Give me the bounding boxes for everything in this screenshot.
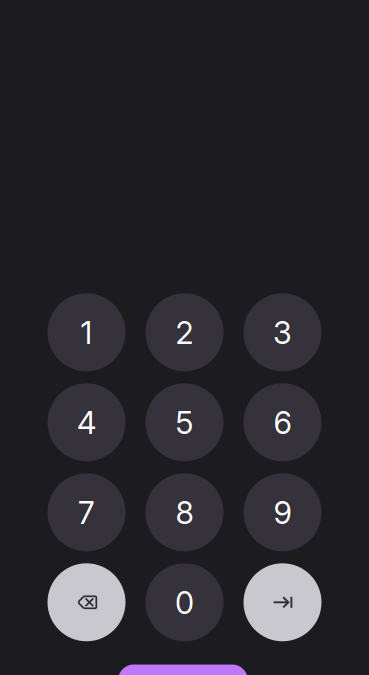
button[interactable]: 2 [145, 293, 223, 371]
staticText: 8 [175, 494, 193, 531]
staticText: 9 [273, 494, 291, 531]
button[interactable]: 7 [47, 473, 125, 551]
staticText: 4 [77, 404, 96, 441]
button[interactable]: Continue [118, 664, 248, 675]
staticText: 7 [78, 494, 95, 531]
staticText: 3 [273, 314, 292, 351]
staticText: 0 [175, 584, 194, 621]
button[interactable]: 3 [243, 293, 321, 371]
button[interactable]: 5 [145, 383, 223, 461]
button[interactable]: Submit [243, 563, 321, 641]
button[interactable]: 4 [47, 383, 125, 461]
staticText: 6 [273, 404, 291, 441]
staticText: 1 [80, 314, 92, 351]
button[interactable]: 6 [243, 383, 321, 461]
button[interactable]: 0 [145, 563, 223, 641]
staticText: 5 [175, 404, 193, 441]
button[interactable]: Delete [47, 563, 125, 641]
button[interactable]: 1 [47, 293, 125, 371]
button[interactable]: 9 [243, 473, 321, 551]
staticText: 2 [175, 314, 193, 351]
button[interactable]: 8 [145, 473, 223, 551]
